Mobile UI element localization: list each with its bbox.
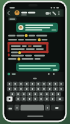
- button[interactable]: [47, 87, 52, 91]
- button[interactable]: [57, 9, 64, 16]
- button[interactable]: [56, 92, 61, 96]
- button[interactable]: [16, 63, 60, 72]
- button[interactable]: [41, 87, 46, 91]
- button[interactable]: [15, 104, 20, 111]
- button[interactable]: [21, 105, 44, 111]
- button[interactable]: [13, 87, 18, 91]
- button[interactable]: [52, 9, 58, 16]
- button[interactable]: [7, 97, 13, 101]
- button[interactable]: [30, 82, 35, 86]
- button[interactable]: [8, 18, 17, 21]
- button[interactable]: [18, 82, 23, 86]
- button[interactable]: [44, 97, 49, 101]
- button[interactable]: [24, 87, 29, 91]
- button[interactable]: [24, 82, 29, 86]
- button[interactable]: [53, 82, 58, 86]
- button[interactable]: [7, 87, 12, 91]
- button[interactable]: [16, 97, 21, 101]
- button[interactable]: [6, 9, 13, 16]
- button[interactable]: [56, 97, 64, 101]
- button[interactable]: [50, 92, 55, 96]
- button[interactable]: [36, 87, 41, 91]
- button[interactable]: [21, 92, 26, 96]
- button[interactable]: [39, 97, 44, 101]
- button[interactable]: [10, 92, 15, 96]
- button[interactable]: [27, 92, 32, 96]
- button[interactable]: [44, 104, 49, 111]
- button[interactable]: [16, 23, 58, 33]
- button[interactable]: [36, 82, 41, 86]
- button[interactable]: [21, 97, 26, 101]
- button[interactable]: [16, 92, 21, 96]
- button[interactable]: [50, 97, 55, 101]
- button[interactable]: [7, 82, 12, 86]
- button[interactable]: [33, 97, 38, 101]
- button[interactable]: [59, 82, 64, 86]
- button[interactable]: [44, 92, 49, 96]
- button[interactable]: [47, 82, 52, 86]
- button[interactable]: [30, 87, 35, 91]
- button[interactable]: [27, 97, 32, 101]
- button[interactable]: [14, 9, 36, 16]
- button[interactable]: [50, 104, 63, 111]
- button[interactable]: [18, 87, 23, 91]
- button[interactable]: [7, 104, 14, 111]
- button[interactable]: [33, 92, 38, 96]
- button[interactable]: [44, 9, 52, 16]
- button[interactable]: [13, 82, 18, 86]
- button[interactable]: [59, 87, 64, 91]
- button[interactable]: [39, 92, 44, 96]
- button[interactable]: [53, 87, 58, 91]
- button[interactable]: [41, 82, 46, 86]
